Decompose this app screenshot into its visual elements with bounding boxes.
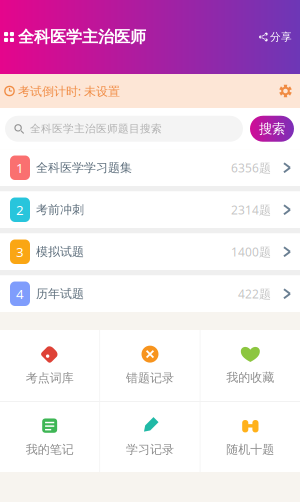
button[interactable]: 学习记录	[100, 402, 200, 472]
button[interactable]: 随机十题	[201, 402, 300, 472]
staticText: 学习记录	[126, 442, 174, 457]
staticText: 2	[16, 201, 24, 219]
staticText: 考试倒计时: 未设置	[18, 83, 120, 99]
staticText: 4	[16, 285, 24, 303]
staticText: 分享	[270, 30, 292, 43]
button[interactable]: 搜索	[250, 116, 294, 142]
staticText: 我的笔记	[26, 442, 74, 457]
staticText: 模拟试题	[36, 244, 84, 259]
staticText: 随机十题	[226, 442, 274, 457]
staticText: 考点词库	[26, 371, 74, 385]
button[interactable]: 2	[0, 191, 300, 228]
button[interactable]: 4	[0, 275, 300, 312]
staticText: 6356题	[231, 160, 271, 176]
staticText: 422题	[238, 286, 271, 302]
staticText: 全科医学主治医师题目搜索	[30, 122, 162, 135]
staticText: 考前冲刺	[36, 202, 84, 217]
button[interactable]: 错题记录	[100, 330, 200, 401]
staticText: 2314题	[231, 202, 271, 218]
button[interactable]: 3	[0, 233, 300, 270]
button[interactable]: 1	[0, 149, 300, 186]
button[interactable]: 全科医学主治医师	[4, 27, 146, 47]
staticText: 全科医学学习题集	[36, 160, 132, 175]
staticText: 错题记录	[126, 371, 174, 385]
staticText: 全科医学主治医师	[18, 27, 146, 47]
button[interactable]: 考点词库	[0, 330, 99, 401]
button[interactable]: 分享	[259, 30, 292, 43]
staticText: 历年试题	[36, 286, 84, 301]
staticText: 1	[16, 159, 24, 177]
button[interactable]: 全科医学主治医师题目搜索	[5, 116, 243, 142]
button[interactable]: 我的收藏	[201, 330, 300, 401]
staticText: 搜索	[259, 121, 285, 137]
staticText: 3	[16, 243, 24, 261]
button[interactable]: 我的笔记	[0, 402, 99, 472]
button[interactable]: 考试倒计时: 未设置	[0, 74, 300, 108]
staticText: 1400题	[231, 244, 271, 260]
staticText: 我的收藏	[226, 370, 274, 385]
